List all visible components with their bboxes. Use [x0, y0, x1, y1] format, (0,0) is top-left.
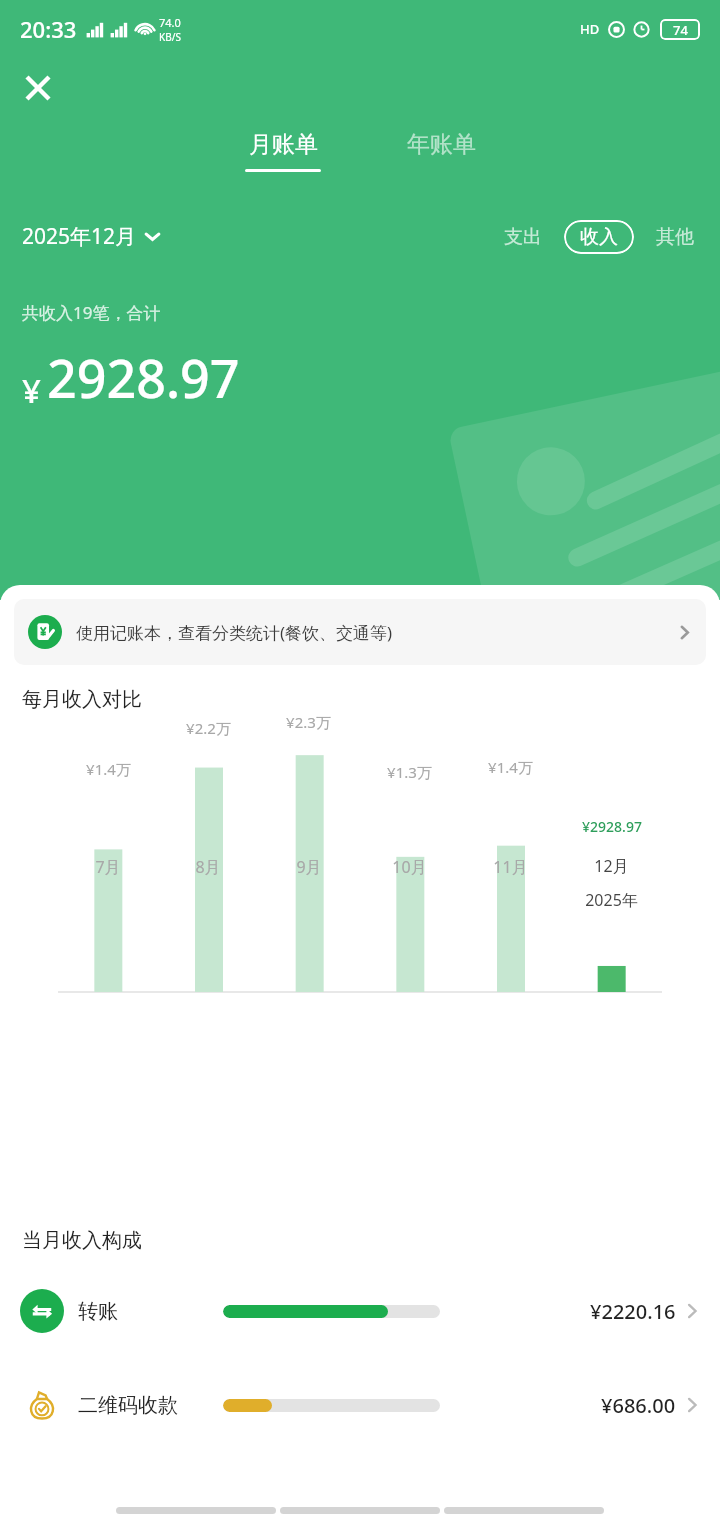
button[interactable]: 其他	[652, 218, 698, 256]
staticText: 20:33	[20, 14, 77, 44]
staticText: 74.0	[159, 15, 181, 30]
staticText: 2928.97	[47, 342, 240, 413]
staticText: 年账单	[407, 130, 476, 159]
button[interactable]: 二维码收款	[0, 1379, 720, 1431]
button[interactable]: Close	[14, 64, 62, 112]
staticText: 共收入19笔，合计	[22, 301, 161, 324]
staticText: 收入	[580, 225, 618, 249]
button[interactable]: 年账单	[397, 126, 486, 176]
staticText: KB/S	[159, 30, 181, 44]
staticText: HD	[580, 20, 600, 38]
staticText: 12月	[594, 855, 629, 877]
staticText: 8月	[195, 856, 221, 878]
staticText: 10月	[392, 856, 427, 878]
staticText: 使用记账本，查看分类统计(餐饮、交通等)	[76, 621, 393, 644]
staticText: ¥1.3万	[387, 762, 432, 782]
staticText: 二维码收款	[78, 1393, 223, 1418]
staticText: 2025年	[585, 889, 638, 911]
staticText: ¥	[22, 368, 41, 413]
button[interactable]: 收入	[564, 220, 634, 254]
button[interactable]: 支出	[500, 218, 546, 256]
staticText: ¥2.3万	[286, 712, 331, 732]
staticText: ¥2220.16	[590, 1298, 676, 1325]
staticText: 当月收入构成	[22, 1228, 142, 1253]
staticText: 2025年12月	[22, 222, 137, 251]
staticText: 其他	[656, 225, 694, 249]
staticText: 月账单	[249, 130, 318, 159]
staticText: 9月	[296, 856, 322, 878]
button[interactable]: 使用记账本，查看分类统计(餐饮、交通等)	[14, 599, 706, 665]
staticText: ¥1.4万	[488, 757, 533, 777]
staticText: ¥686.00	[601, 1392, 676, 1419]
staticText: 每月收入对比	[22, 687, 142, 712]
button[interactable]: 转账	[0, 1285, 720, 1337]
staticText: 7月	[95, 856, 121, 878]
button[interactable]: 2025年12月	[22, 216, 160, 257]
staticText: 转账	[78, 1299, 223, 1324]
staticText: 11月	[493, 856, 528, 878]
staticText: ¥2.2万	[186, 718, 231, 738]
button[interactable]: 月账单	[235, 126, 331, 176]
staticText: ¥2928.97	[582, 817, 642, 836]
staticText: 支出	[504, 225, 542, 249]
staticText: ¥1.4万	[86, 759, 131, 779]
staticText: 74	[673, 21, 688, 39]
